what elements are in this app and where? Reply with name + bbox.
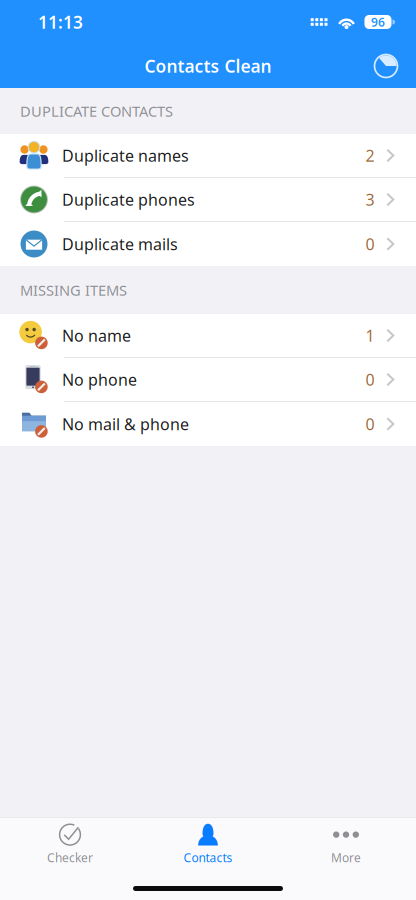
button[interactable]: Duplicate mails <box>0 222 416 266</box>
staticText: Duplicate mails <box>62 233 178 255</box>
button[interactable]: Checker <box>1 821 139 868</box>
button[interactable]: More <box>277 821 415 868</box>
staticText: Contacts Clean <box>144 54 271 77</box>
staticText: MISSING ITEMS <box>20 280 127 300</box>
staticText: 2 <box>366 145 375 166</box>
button[interactable]: Contacts <box>139 821 277 868</box>
staticText: Duplicate names <box>62 145 189 166</box>
button[interactable]: Duplicate phones <box>0 178 416 222</box>
button[interactable]: Statistics <box>364 44 408 88</box>
staticText: 11:13 <box>38 10 83 33</box>
staticText: 3 <box>366 189 375 210</box>
staticText: 0 <box>366 369 375 390</box>
staticText: 0 <box>366 413 375 435</box>
staticText: No name <box>62 325 131 346</box>
button[interactable]: Duplicate names <box>0 134 416 178</box>
button[interactable]: No mail & phone <box>0 402 416 446</box>
staticText: 1 <box>366 325 375 346</box>
staticText: DUPLICATE CONTACTS <box>20 101 173 121</box>
button[interactable]: No phone <box>0 358 416 402</box>
staticText: 0 <box>366 233 375 255</box>
staticText: 96 <box>371 14 385 30</box>
staticText: More <box>331 850 361 865</box>
button[interactable]: No name <box>0 314 416 358</box>
staticText: No phone <box>62 369 137 390</box>
staticText: Contacts <box>183 850 232 865</box>
staticText: Duplicate phones <box>62 189 195 210</box>
staticText: Checker <box>47 850 93 865</box>
staticText: No mail & phone <box>62 413 189 435</box>
